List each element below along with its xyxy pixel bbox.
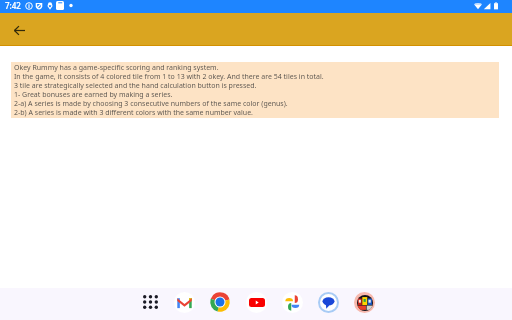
button[interactable]: Back bbox=[9, 20, 29, 40]
button[interactable]: All apps bbox=[140, 292, 160, 312]
button[interactable]: Okey Rummy bbox=[354, 292, 375, 313]
button[interactable]: Photos bbox=[282, 292, 303, 313]
button[interactable]: Messages bbox=[318, 292, 339, 313]
button[interactable]: Gmail bbox=[174, 292, 195, 313]
button[interactable]: YouTube bbox=[246, 292, 267, 313]
staticText: Okey Rummy has a game-specific scoring a… bbox=[14, 63, 324, 117]
staticText: 7:42 bbox=[5, 0, 21, 11]
button[interactable]: Chrome bbox=[210, 292, 230, 312]
